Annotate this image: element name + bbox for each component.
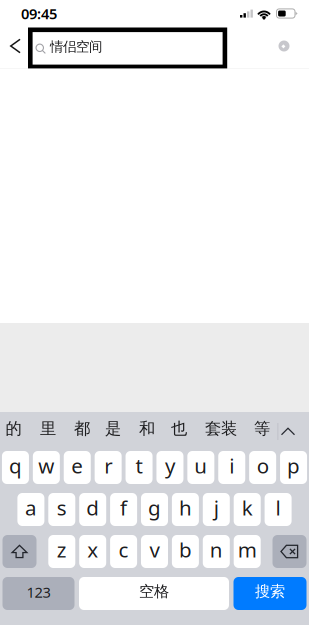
button[interactable]: s [48,493,75,526]
staticText: z [57,535,67,563]
button[interactable]: 套装 [199,412,243,451]
button[interactable]: d [79,493,106,526]
staticText: 搜索 [255,582,285,601]
button[interactable]: z [48,535,75,568]
staticText: t [136,451,143,479]
staticText: 123 [26,582,50,602]
staticText: 也 [171,418,187,439]
button[interactable]: r [95,451,122,484]
staticText: c [119,535,129,563]
button[interactable]: k [234,493,261,526]
staticText: 是 [105,418,121,439]
staticText: 和 [139,418,155,439]
button[interactable]: l [265,493,292,526]
button[interactable]: 等 [247,412,277,451]
staticText: n [210,535,223,563]
button[interactable]: g [141,493,168,526]
button[interactable]: h [172,493,199,526]
button[interactable]: 情侣空间 [28,27,227,69]
button[interactable]: u [187,451,214,484]
staticText: 里 [40,418,56,439]
staticText: u [194,451,207,479]
button[interactable]: Clear text [264,25,304,67]
staticText: j [214,493,219,521]
staticText: x [87,535,98,563]
button[interactable]: p [280,451,307,484]
button[interactable]: 和 [132,412,162,451]
button[interactable]: 是 [98,412,128,451]
staticText: 情侣空间 [50,38,102,55]
button[interactable]: More candidates [273,412,303,451]
staticText: p [287,451,300,479]
button[interactable]: a [17,493,44,526]
staticText: d [86,493,99,521]
staticText: v [149,535,159,563]
staticText: h [179,493,192,521]
button[interactable]: x [79,535,106,568]
staticText: o [257,451,269,479]
staticText: i [229,451,234,479]
button[interactable]: i [218,451,245,484]
button[interactable]: 里 [33,412,63,451]
button[interactable]: m [234,535,261,568]
button[interactable]: c [110,535,137,568]
button[interactable]: w [33,451,60,484]
staticText: y [165,451,175,479]
button[interactable]: o [249,451,276,484]
button[interactable]: q [2,451,29,484]
button[interactable]: 空格 [79,577,229,610]
staticText: s [57,493,67,521]
staticText: a [25,493,37,521]
staticText: 空格 [139,582,169,601]
button[interactable]: Back [2,25,28,67]
button[interactable]: f [110,493,137,526]
button[interactable]: Shift [2,535,36,568]
button[interactable]: 也 [164,412,194,451]
staticText: l [276,493,281,521]
button[interactable]: 的 [0,412,28,451]
button[interactable]: t [126,451,153,484]
staticText: e [71,451,83,479]
staticText: b [179,535,192,563]
staticText: 09:45 [21,4,57,23]
button[interactable]: v [141,535,168,568]
staticText: 等 [254,418,270,439]
staticText: k [242,493,253,521]
button[interactable]: 搜索 [233,577,306,610]
button[interactable]: j [203,493,230,526]
button[interactable]: b [172,535,199,568]
staticText: q [9,451,22,479]
staticText: 套装 [205,418,237,439]
button[interactable]: n [203,535,230,568]
staticText: w [38,451,54,479]
staticText: g [148,493,161,521]
staticText: 都 [74,418,90,439]
staticText: m [238,535,257,563]
button[interactable]: e [64,451,91,484]
button[interactable]: Delete [272,535,306,568]
staticText: f [120,493,127,521]
button[interactable]: 123 [2,577,74,610]
staticText: r [104,451,112,479]
staticText: 的 [5,418,21,439]
button[interactable]: y [156,451,183,484]
button[interactable]: 都 [67,412,97,451]
